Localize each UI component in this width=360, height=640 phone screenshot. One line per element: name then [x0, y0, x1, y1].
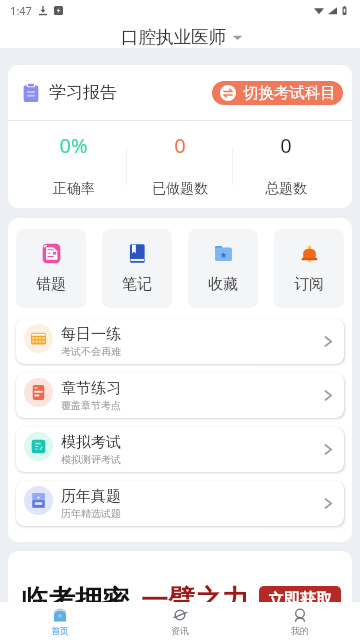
staticText: 0	[174, 132, 186, 159]
button[interactable]: 临考押密	[8, 551, 352, 631]
button[interactable]: 收藏	[188, 229, 258, 308]
staticText: 总题数	[265, 180, 307, 198]
staticText: 学习报告	[49, 82, 117, 103]
staticText: 一臂之力	[141, 583, 249, 617]
button[interactable]: 章节练习	[16, 373, 344, 418]
button[interactable]: 我的	[240, 602, 360, 640]
staticText: 0	[280, 132, 292, 159]
staticText: 笔记	[122, 275, 152, 294]
button[interactable]: 资讯	[120, 602, 240, 640]
staticText: 我的	[291, 625, 309, 636]
button[interactable]: 立即获取	[259, 586, 341, 614]
staticText: 收藏	[208, 275, 238, 294]
staticText: 口腔执业医师	[121, 26, 226, 48]
staticText: 切换考试科目	[243, 83, 336, 103]
staticText: 覆盖章节考点	[61, 399, 121, 412]
button[interactable]: 首页	[0, 602, 120, 640]
staticText: 资讯	[171, 625, 189, 636]
button[interactable]: 订阅	[274, 229, 344, 308]
button[interactable]: 错题	[16, 229, 86, 308]
button[interactable]: 每日一练	[16, 319, 344, 364]
button[interactable]: 模拟考试	[16, 427, 344, 472]
staticText: 正确率	[53, 180, 95, 198]
staticText: 历年精选试题	[61, 507, 121, 520]
button[interactable]: 笔记	[102, 229, 172, 308]
staticText: 1:47	[10, 3, 32, 18]
staticText: 历年真题	[61, 487, 121, 506]
staticText: 模拟测评考试	[61, 453, 121, 466]
staticText: 已做题数	[152, 180, 208, 198]
staticText: 考试不会再难	[61, 345, 121, 358]
staticText: 临考押密	[21, 583, 129, 617]
staticText: 订阅	[294, 275, 324, 294]
staticText: 错题	[36, 275, 66, 294]
button[interactable]: 切换考试科目	[212, 81, 343, 105]
staticText: 章节练习	[61, 379, 121, 398]
staticText: 每日一练	[61, 325, 121, 344]
staticText: 首页	[51, 625, 69, 636]
staticText: 0%	[59, 132, 88, 159]
staticText: 模拟考试	[61, 433, 121, 452]
staticText: 立即获取	[268, 590, 332, 610]
button[interactable]: 历年真题	[16, 481, 344, 526]
